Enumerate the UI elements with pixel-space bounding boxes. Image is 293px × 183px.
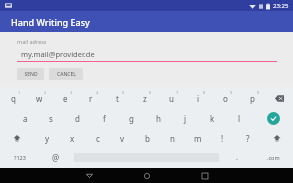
- staticText: mail adress: [17, 38, 47, 45]
- staticText: ?: [246, 133, 250, 144]
- staticText: 9: [230, 90, 233, 95]
- staticText: w: [36, 93, 43, 104]
- staticText: g: [129, 113, 134, 124]
- button[interactable]: ?123: [0, 148, 40, 167]
- staticText: ?123: [14, 154, 26, 161]
- staticText: o: [223, 93, 228, 104]
- staticText: r: [89, 93, 93, 104]
- button[interactable]: y: [34, 128, 60, 148]
- button[interactable]: Enter: [253, 108, 293, 128]
- staticText: t: [116, 93, 119, 104]
- button[interactable]: SEND: [17, 68, 44, 80]
- staticText: m: [194, 133, 202, 144]
- staticText: i: [197, 93, 200, 104]
- staticText: 23:25: [273, 2, 289, 10]
- staticText: e: [63, 93, 68, 104]
- staticText: q: [11, 93, 16, 104]
- button[interactable]: x: [60, 128, 85, 148]
- staticText: y: [45, 133, 50, 144]
- button[interactable]: a: [12, 108, 38, 128]
- staticText: 3: [70, 90, 73, 95]
- button[interactable]: m: [185, 128, 210, 148]
- button[interactable]: k: [199, 108, 226, 128]
- button[interactable]: b: [135, 128, 160, 148]
- staticText: my.mail@provider.de: [21, 49, 95, 59]
- staticText: .com: [267, 154, 280, 161]
- button[interactable]: h: [145, 108, 172, 128]
- button[interactable]: f: [91, 108, 118, 128]
- staticText: s: [49, 113, 53, 124]
- button[interactable]: i: [185, 88, 212, 108]
- button[interactable]: Shift: [260, 128, 293, 148]
- staticText: c: [96, 133, 100, 144]
- staticText: a: [23, 113, 28, 124]
- button[interactable]: d: [64, 108, 91, 128]
- staticText: j: [184, 113, 187, 124]
- staticText: @: [52, 152, 60, 163]
- button[interactable]: o: [212, 88, 239, 108]
- button[interactable]: v: [110, 128, 135, 148]
- staticText: d: [75, 113, 80, 124]
- staticText: k: [210, 113, 215, 124]
- button[interactable]: u: [158, 88, 185, 108]
- button[interactable]: q: [0, 88, 26, 108]
- button[interactable]: e: [52, 88, 78, 108]
- staticText: Hand Writing Easy: [11, 16, 90, 28]
- button[interactable]: t: [104, 88, 131, 108]
- button[interactable]: @: [40, 148, 72, 167]
- button[interactable]: w: [26, 88, 52, 108]
- staticText: .: [236, 153, 238, 163]
- button[interactable]: Shift: [0, 128, 34, 148]
- staticText: 2: [44, 90, 47, 95]
- button[interactable]: r: [78, 88, 104, 108]
- staticText: 7: [176, 90, 179, 95]
- button[interactable]: c: [85, 128, 110, 148]
- staticText: SEND: [24, 71, 38, 78]
- staticText: b: [145, 133, 150, 144]
- button[interactable]: n: [160, 128, 185, 148]
- button[interactable]: l: [226, 108, 253, 128]
- staticText: h: [156, 113, 161, 124]
- staticText: z: [143, 93, 147, 104]
- button[interactable]: Recent apps: [197, 168, 213, 183]
- button[interactable]: !: [210, 128, 235, 148]
- staticText: CANCEL: [57, 71, 76, 78]
- button[interactable]: p: [239, 88, 266, 108]
- staticText: f: [103, 113, 106, 124]
- staticText: 4: [96, 90, 99, 95]
- staticText: 1: [18, 90, 21, 95]
- button[interactable]: s: [38, 108, 64, 128]
- staticText: 6: [149, 90, 152, 95]
- button[interactable]: .com: [253, 148, 293, 167]
- staticText: u: [169, 93, 174, 104]
- staticText: v: [120, 133, 125, 144]
- staticText: !: [221, 133, 224, 144]
- button[interactable]: g: [118, 108, 145, 128]
- button[interactable]: j: [172, 108, 199, 128]
- staticText: x: [70, 133, 75, 144]
- staticText: 0: [257, 90, 260, 95]
- button[interactable]: ?: [235, 128, 260, 148]
- staticText: 5: [122, 90, 125, 95]
- button[interactable]: Home: [139, 168, 155, 183]
- staticText: p: [250, 93, 255, 104]
- staticText: n: [170, 133, 175, 144]
- button[interactable]: Back: [81, 168, 97, 183]
- staticText: 8: [203, 90, 206, 95]
- button[interactable]: z: [131, 88, 158, 108]
- staticText: l: [238, 113, 241, 124]
- button[interactable]: Backspace: [266, 88, 293, 108]
- button[interactable]: CANCEL: [49, 68, 83, 80]
